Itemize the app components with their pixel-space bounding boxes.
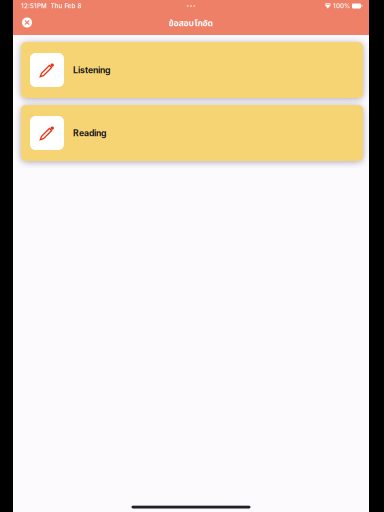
staticText: 12:51PM <box>21 2 47 10</box>
button[interactable]: Reading <box>21 105 363 161</box>
staticText: Listening <box>73 65 110 75</box>
button[interactable]: Close <box>14 11 40 34</box>
button[interactable]: Listening <box>21 42 363 98</box>
staticText: Thu Feb 8 <box>50 2 81 10</box>
staticText: Reading <box>73 128 106 138</box>
staticText: 100% <box>333 2 350 10</box>
staticText: ข้อสอบโกอัด <box>168 17 213 30</box>
